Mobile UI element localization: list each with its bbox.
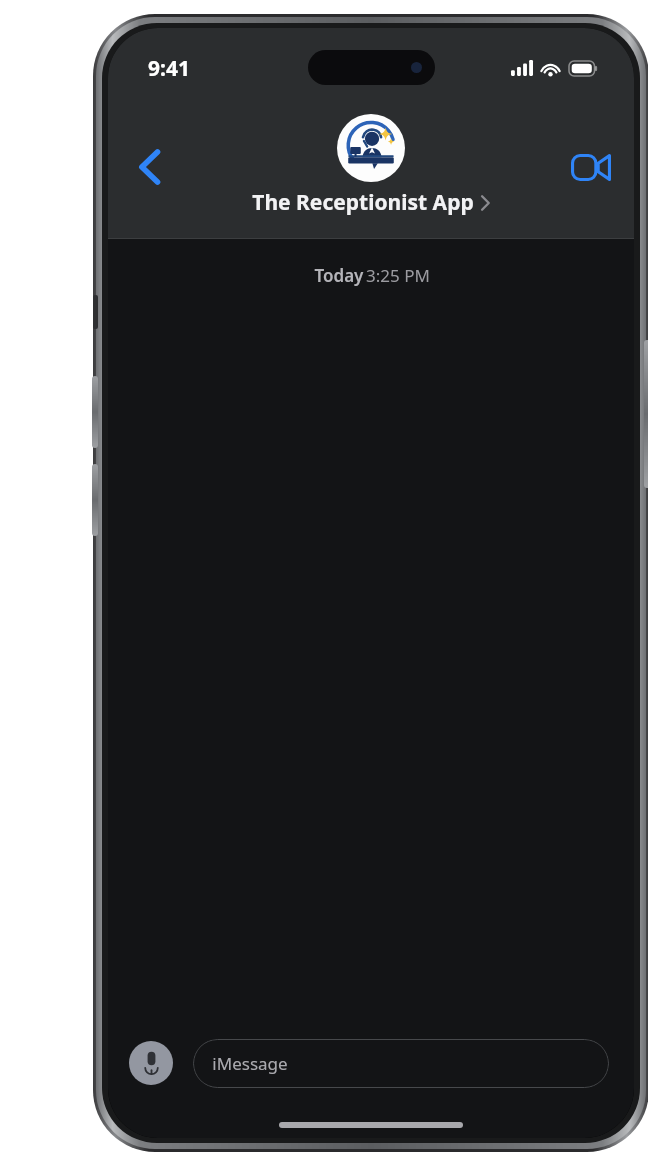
button[interactable]: Audio message <box>129 1041 173 1085</box>
staticText: The Receptionist App <box>252 188 474 217</box>
button[interactable]: The Receptionist App <box>252 114 490 217</box>
button[interactable]: iMessage <box>193 1039 609 1088</box>
staticText: iMessage <box>212 1052 288 1075</box>
staticText: 3:25 PM <box>366 264 430 287</box>
staticText: 9:41 <box>148 54 190 83</box>
button[interactable]: FaceTime video call <box>562 138 620 196</box>
staticText: Today <box>312 264 366 287</box>
button[interactable]: Back <box>122 140 176 194</box>
